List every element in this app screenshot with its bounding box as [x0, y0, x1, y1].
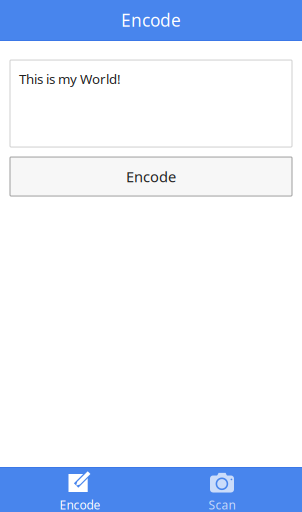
staticText: Encode	[59, 497, 100, 512]
staticText: Scan	[208, 497, 235, 512]
staticText: This is my World!	[19, 70, 121, 88]
button[interactable]: Encode	[10, 157, 292, 196]
staticText: Encode	[121, 8, 181, 31]
button[interactable]: Scan	[167, 468, 277, 512]
staticText: Encode	[126, 167, 176, 186]
button[interactable]: Encode	[25, 468, 135, 512]
